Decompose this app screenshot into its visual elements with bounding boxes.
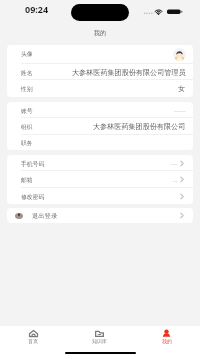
staticText: 知识库 <box>92 338 107 344</box>
staticText: 账号 <box>21 107 33 114</box>
staticText: 我的 <box>162 338 172 344</box>
button[interactable]: 性别 <box>7 80 193 97</box>
button[interactable]: 知识库 <box>66 326 133 348</box>
button[interactable]: 退出登录 <box>7 208 193 223</box>
staticText: 组织 <box>21 123 33 130</box>
staticText: 大参林医药集团股份有限公司管理员 <box>72 68 186 77</box>
staticText: 邮箱 <box>21 176 33 183</box>
staticText: 性别 <box>21 85 33 92</box>
staticText: 大参林医药集团股份有限公司 <box>93 122 186 131</box>
staticText: 修改密码 <box>21 193 45 200</box>
staticText: --- <box>171 158 178 168</box>
staticText: ----- <box>174 105 186 115</box>
button[interactable]: 姓名 <box>7 64 193 80</box>
button[interactable]: 首页 <box>0 326 66 348</box>
staticText: 09:24 <box>25 3 49 15</box>
staticText: 姓名 <box>21 69 33 76</box>
staticText: 首页 <box>28 338 38 344</box>
button[interactable]: 职务 <box>7 135 193 150</box>
button[interactable]: 邮箱 <box>7 171 193 188</box>
button[interactable]: 手机号码 <box>7 155 193 171</box>
staticText: 职务 <box>21 139 33 146</box>
button[interactable]: 头像 <box>7 45 193 64</box>
staticText: -- <box>173 175 178 185</box>
staticText: 女 <box>178 84 186 93</box>
button[interactable]: 账号 <box>7 102 193 118</box>
staticText: 我的 <box>94 29 106 37</box>
button[interactable]: 修改密码 <box>7 188 193 204</box>
staticText: 退出登录 <box>32 212 58 220</box>
button[interactable]: 我的 <box>133 326 200 348</box>
button[interactable]: 组织 <box>7 118 193 135</box>
staticText: 头像 <box>21 50 33 57</box>
staticText: 手机号码 <box>21 160 45 167</box>
